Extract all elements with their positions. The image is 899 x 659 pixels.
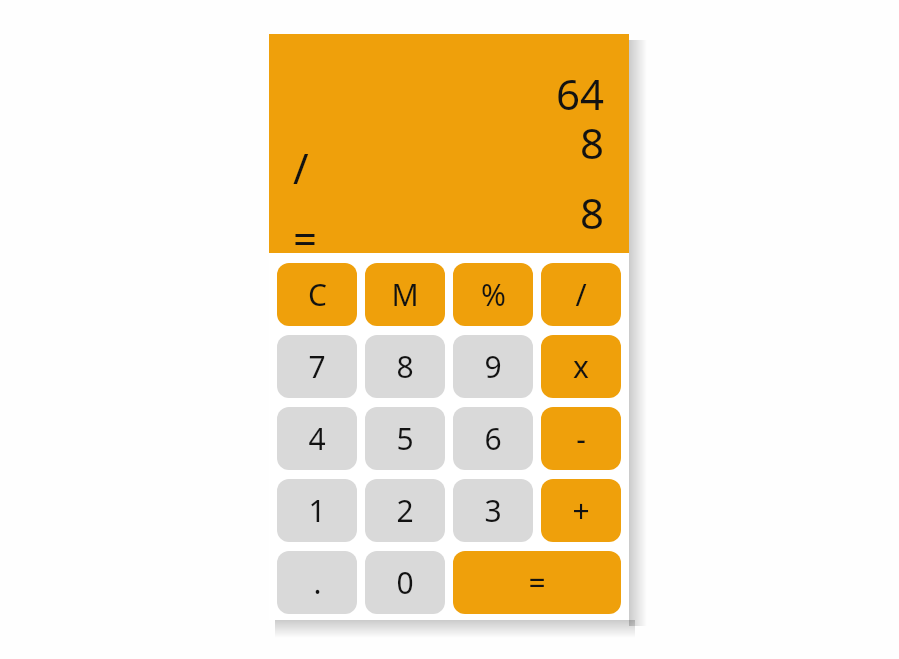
button[interactable]: . bbox=[277, 551, 357, 614]
staticText: / bbox=[575, 274, 587, 315]
button[interactable]: 5 bbox=[365, 407, 445, 470]
staticText: 3 bbox=[484, 490, 502, 531]
staticText: = bbox=[528, 562, 546, 603]
button[interactable]: - bbox=[541, 407, 621, 470]
staticText: - bbox=[576, 418, 586, 459]
button[interactable]: 1 bbox=[277, 479, 357, 542]
staticText: . bbox=[313, 562, 322, 603]
button[interactable]: 4 bbox=[277, 407, 357, 470]
staticText: 1 bbox=[308, 490, 326, 531]
button[interactable]: x bbox=[541, 335, 621, 398]
button[interactable]: + bbox=[541, 479, 621, 542]
staticText: + bbox=[572, 490, 590, 531]
staticText: x bbox=[573, 346, 589, 387]
staticText: 5 bbox=[396, 418, 414, 459]
button[interactable]: M bbox=[365, 263, 445, 326]
staticText: 8 bbox=[396, 346, 414, 387]
staticText: 7 bbox=[308, 346, 326, 387]
button[interactable]: / bbox=[541, 263, 621, 326]
staticText: 8 bbox=[579, 114, 604, 171]
button[interactable]: 2 bbox=[365, 479, 445, 542]
button[interactable]: 7 bbox=[277, 335, 357, 398]
staticText: = bbox=[293, 209, 318, 253]
button[interactable]: 6 bbox=[453, 407, 533, 470]
staticText: 6 bbox=[484, 418, 502, 459]
staticText: 4 bbox=[308, 418, 326, 459]
button[interactable]: 8 bbox=[365, 335, 445, 398]
staticText: 64 bbox=[555, 65, 604, 122]
button[interactable]: 0 bbox=[365, 551, 445, 614]
staticText: / bbox=[293, 139, 309, 196]
button[interactable]: = bbox=[453, 551, 621, 614]
staticText: 8 bbox=[579, 184, 604, 241]
staticText: 0 bbox=[396, 562, 414, 603]
staticText: % bbox=[481, 274, 506, 315]
button[interactable]: C bbox=[277, 263, 357, 326]
button[interactable]: 3 bbox=[453, 479, 533, 542]
button[interactable]: % bbox=[453, 263, 533, 326]
button[interactable]: 9 bbox=[453, 335, 533, 398]
staticText: 2 bbox=[396, 490, 414, 531]
staticText: C bbox=[308, 274, 327, 315]
staticText: 9 bbox=[484, 346, 502, 387]
staticText: M bbox=[391, 274, 419, 315]
